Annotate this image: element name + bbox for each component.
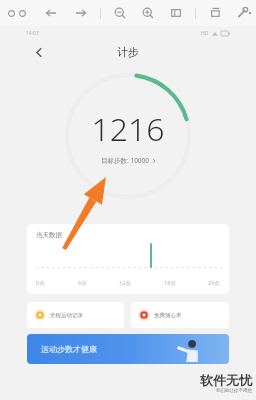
staticText: 目标步数: 10000: [101, 156, 150, 165]
button[interactable]: 目标步数: 10000: [101, 156, 156, 165]
staticText: 运动步数才健康: [41, 344, 97, 354]
staticText: 1216: [91, 107, 165, 151]
button[interactable]: 当天数据: [27, 224, 229, 294]
button[interactable]: Rotate: [206, 4, 224, 22]
staticText: 0点: [36, 279, 45, 287]
staticText: 24点: [208, 279, 220, 287]
button[interactable]: Tools: [234, 4, 250, 22]
staticText: 12点: [119, 279, 131, 287]
button[interactable]: Forward: [72, 4, 90, 22]
button[interactable]: Back: [42, 4, 60, 22]
button[interactable]: 免费测心率: [131, 302, 229, 328]
staticText: 6点: [78, 279, 87, 287]
button[interactable]: 运动步数才健康: [27, 334, 229, 364]
staticText: HD: [201, 30, 209, 37]
staticText: 全程运动记录: [50, 312, 83, 319]
staticText: 18点: [164, 279, 176, 287]
button[interactable]: Layout: [167, 4, 185, 22]
button[interactable]: 全程运动记录: [27, 302, 124, 328]
button[interactable]: Zoom in: [139, 4, 157, 22]
staticText: 14:07: [26, 30, 39, 37]
button[interactable]: Tabs: [6, 10, 28, 17]
staticText: 我们能让你不用愁: [216, 388, 252, 394]
staticText: 当天数据: [36, 231, 62, 239]
button[interactable]: Zoom out: [111, 4, 129, 22]
button[interactable]: Back: [30, 43, 48, 61]
staticText: 软件无忧: [200, 372, 252, 388]
staticText: 计步: [117, 45, 139, 59]
staticText: 免费测心率: [154, 312, 182, 319]
